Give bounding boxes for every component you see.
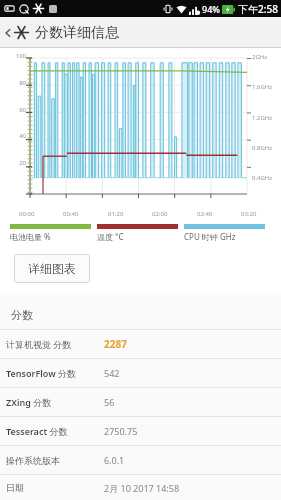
staticText: CPU 时钟 GHz bbox=[184, 231, 236, 242]
staticText: 温度 °C bbox=[97, 231, 124, 242]
button[interactable]: Back bbox=[0, 17, 127, 48]
staticText: 02:00 bbox=[152, 210, 168, 218]
staticText: 20 bbox=[19, 159, 26, 167]
staticText: 2750.75 bbox=[104, 425, 138, 437]
button[interactable]: ZXing 分数 bbox=[0, 388, 281, 417]
staticText: 计算机视觉 分数 bbox=[6, 338, 104, 350]
staticText: 00:40 bbox=[63, 210, 79, 218]
staticText: 60 bbox=[19, 106, 26, 114]
staticText: 1.6GHz bbox=[252, 83, 273, 91]
staticText: 2287 bbox=[104, 337, 127, 351]
button[interactable]: 日期 bbox=[0, 475, 281, 500]
staticText: 03:20 bbox=[241, 210, 257, 218]
staticText: 2月 10 2017 14:58 bbox=[104, 482, 180, 494]
staticText: 542 bbox=[104, 367, 120, 379]
staticText: 电池电量 % bbox=[10, 231, 51, 242]
staticText: 分数 bbox=[11, 308, 33, 322]
staticText: Tesseract 分数 bbox=[6, 425, 104, 437]
staticText: 6.0.1 bbox=[104, 454, 125, 466]
staticText: 下午2:58 bbox=[238, 2, 278, 16]
button[interactable]: 详细图表 bbox=[14, 254, 90, 283]
staticText: 00:00 bbox=[19, 210, 35, 218]
staticText: 02:40 bbox=[197, 210, 213, 218]
staticText: TensorFlow 分数 bbox=[6, 367, 104, 379]
button[interactable]: Tesseract 分数 bbox=[0, 417, 281, 446]
staticText: 0.8GHz bbox=[252, 144, 273, 152]
staticText: 2GHz bbox=[252, 53, 268, 61]
staticText: 1.2GHz bbox=[252, 114, 273, 122]
staticText: ZXing 分数 bbox=[6, 396, 104, 408]
staticText: 100 bbox=[15, 52, 26, 60]
button[interactable]: 计算机视觉 分数 bbox=[0, 330, 281, 359]
staticText: 01:20 bbox=[108, 210, 124, 218]
staticText: 0.4GHz bbox=[252, 174, 273, 182]
staticText: 80 bbox=[19, 79, 26, 87]
staticText: 操作系统版本 bbox=[6, 455, 104, 466]
staticText: 40 bbox=[19, 132, 26, 140]
staticText: 94% bbox=[202, 3, 220, 15]
staticText: 56 bbox=[104, 396, 115, 408]
staticText: 详细图表 bbox=[28, 261, 76, 276]
button[interactable]: 操作系统版本 bbox=[0, 446, 281, 475]
staticText: 分数详细信息 bbox=[35, 24, 119, 42]
button[interactable]: TensorFlow 分数 bbox=[0, 359, 281, 388]
staticText: 日期 bbox=[6, 482, 104, 493]
